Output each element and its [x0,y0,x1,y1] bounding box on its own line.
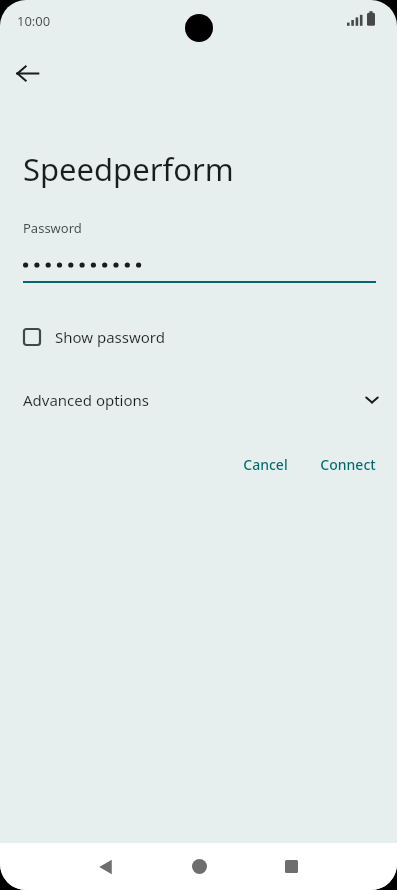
staticText: Show password [55,327,165,347]
button[interactable]: Advanced options [0,380,397,420]
staticText: 10:00 [17,12,51,30]
staticText: Speedperform [23,148,234,190]
button[interactable]: Recent apps [267,843,315,890]
button[interactable]: Back [3,49,51,97]
staticText: Cancel [243,455,288,474]
button[interactable]: Home [175,843,223,890]
button[interactable]: Cancel [232,447,299,482]
button[interactable] [0,249,397,281]
staticText: Password [23,219,82,237]
staticText: Advanced options [23,390,150,410]
button[interactable]: Back [82,843,130,890]
button[interactable]: Show password [0,317,397,357]
other: Expand advanced options [364,392,380,408]
button[interactable]: Connect [309,447,387,482]
staticText: Connect [320,455,376,474]
